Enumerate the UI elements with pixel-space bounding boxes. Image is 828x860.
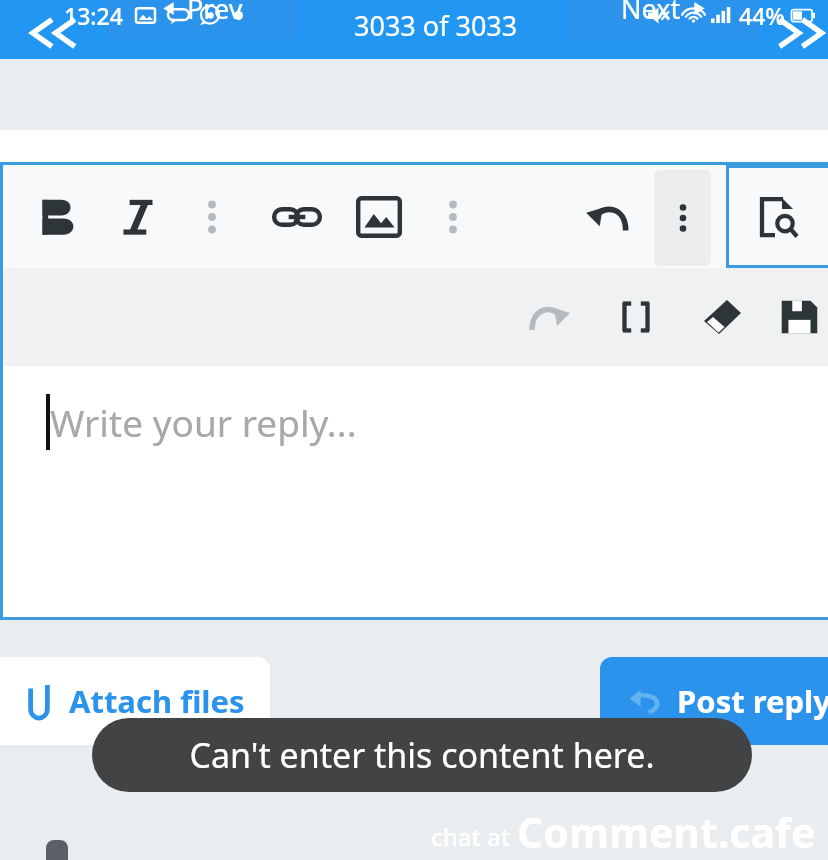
button[interactable]: Last page [776,12,828,54]
button[interactable]: More insert options [419,165,487,268]
button[interactable]: Prev [106,0,298,41]
staticText: Comment.cafe [517,804,816,860]
button[interactable]: Italic [105,165,173,268]
button[interactable]: More text options [178,165,246,268]
button[interactable]: Bold [22,165,90,268]
button[interactable]: More options [654,170,711,266]
button[interactable]: Redo [515,268,583,366]
staticText: 13:24 [64,0,123,30]
staticText: Prev [187,0,243,27]
button[interactable]: Erase formatting [688,268,756,366]
staticText: 3033 of 3033 [354,7,518,44]
staticText: chat at [431,820,517,853]
button[interactable]: Undo [574,165,642,268]
staticText: Can't enter this content here. [189,732,655,778]
button[interactable]: Insert image [345,165,413,268]
staticText: Write your reply... [50,397,357,447]
button[interactable]: First page [28,12,88,54]
staticText: 44% [739,0,785,30]
button[interactable]: Insert code [602,268,670,366]
button[interactable]: 3033 of 3033 [316,0,556,58]
button[interactable]: Insert link [263,165,331,268]
staticText: Attach files [69,680,245,722]
button[interactable]: Post reply [600,657,828,745]
staticText: Post reply [677,680,828,722]
button[interactable]: Preview [726,165,828,268]
staticText: Next [621,0,681,27]
button[interactable]: Attach files [0,657,270,745]
button[interactable]: Save draft [765,268,828,366]
button[interactable]: Write your reply... [0,366,828,620]
button[interactable]: Next [567,0,760,41]
